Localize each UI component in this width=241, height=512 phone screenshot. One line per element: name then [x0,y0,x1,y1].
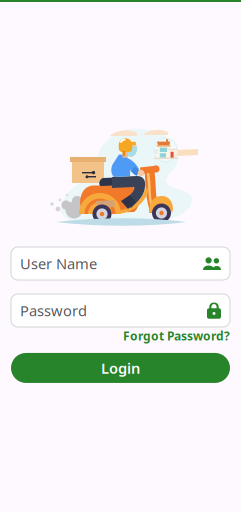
button[interactable]: Login [11,353,230,383]
staticText: Password [20,301,87,320]
staticText: User Name [20,254,97,273]
staticText: Forgot Password? [123,328,230,344]
button[interactable]: User Name [11,247,230,280]
staticText: Login [101,358,140,378]
button[interactable]: Forgot Password? [123,328,230,344]
button[interactable]: Password [11,294,230,327]
